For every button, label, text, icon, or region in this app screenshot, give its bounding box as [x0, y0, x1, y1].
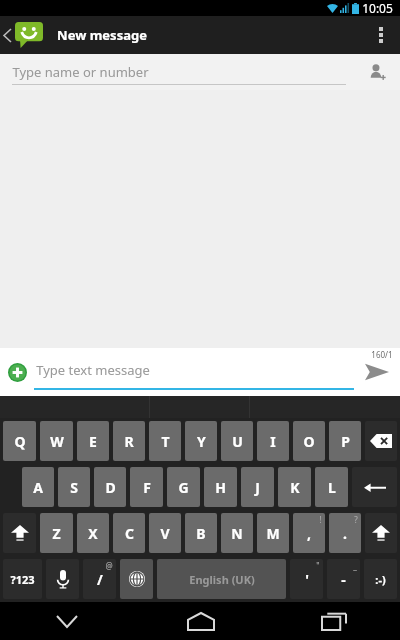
button[interactable]: U: [221, 421, 253, 461]
staticText: A: [33, 478, 43, 497]
button[interactable]: Q: [3, 421, 36, 461]
button[interactable]: M: [257, 513, 289, 553]
button[interactable]: C: [113, 513, 145, 553]
staticText: New message: [57, 26, 147, 44]
button[interactable]: Type text message: [34, 348, 354, 396]
staticText: !: [319, 514, 322, 525]
button[interactable]: X: [77, 513, 109, 553]
staticText: 10:05: [362, 0, 393, 16]
button[interactable]: globe: [120, 559, 153, 599]
staticText: P: [341, 432, 350, 451]
button[interactable]: J: [241, 467, 274, 507]
staticText: ": [316, 560, 320, 571]
button[interactable]: :-): [364, 559, 397, 599]
button[interactable]: Add recipient: [354, 54, 400, 90]
staticText: @: [105, 560, 113, 571]
staticText: Y: [197, 432, 206, 451]
button[interactable]: R: [113, 421, 145, 461]
staticText: U: [232, 432, 243, 451]
button[interactable]: O: [293, 421, 325, 461]
button[interactable]: S: [58, 467, 90, 507]
staticText: B: [196, 524, 206, 543]
staticText: N: [231, 524, 243, 543]
staticText: -: [341, 570, 346, 589]
button[interactable]: Y: [185, 421, 217, 461]
button[interactable]: B: [185, 513, 217, 553]
staticText: ?123: [10, 572, 35, 587]
button[interactable]: P: [329, 421, 361, 461]
button[interactable]: More options: [362, 16, 400, 54]
staticText: :-): [375, 572, 386, 587]
button[interactable]: I: [257, 421, 289, 461]
staticText: ,: [307, 524, 311, 543]
staticText: I: [270, 432, 276, 451]
button[interactable]: Home: [134, 602, 267, 640]
staticText: ': [305, 570, 309, 589]
staticText: E: [89, 432, 97, 451]
staticText: K: [290, 478, 300, 497]
staticText: S: [70, 478, 78, 497]
button[interactable]: V: [149, 513, 181, 553]
button[interactable]: N: [221, 513, 253, 553]
staticText: English (UK): [189, 572, 255, 587]
staticText: V: [160, 524, 170, 543]
staticText: M: [266, 524, 280, 543]
staticText: L: [328, 478, 336, 497]
button[interactable]: Send: [354, 348, 400, 396]
button[interactable]: ": [290, 559, 323, 599]
button[interactable]: Navigate up: [0, 16, 49, 54]
staticText: X: [88, 524, 98, 543]
button[interactable]: E: [77, 421, 109, 461]
button[interactable]: K: [278, 467, 311, 507]
staticText: Q: [14, 432, 26, 451]
button[interactable]: mic: [46, 559, 79, 599]
button[interactable]: English (UK): [157, 559, 286, 599]
button[interactable]: W: [40, 421, 73, 461]
button[interactable]: Type name or number: [0, 54, 354, 90]
button[interactable]: L: [315, 467, 348, 507]
staticText: Type text message: [36, 361, 150, 379]
staticText: Z: [52, 524, 61, 543]
button[interactable]: D: [94, 467, 126, 507]
staticText: F: [143, 478, 151, 497]
button[interactable]: backspace: [365, 421, 397, 461]
staticText: O: [303, 432, 315, 451]
button[interactable]: shift: [3, 513, 36, 553]
staticText: C: [125, 524, 134, 543]
staticText: _: [353, 560, 357, 571]
staticText: J: [255, 478, 260, 497]
staticText: D: [105, 478, 116, 497]
button[interactable]: shift: [365, 513, 397, 553]
staticText: R: [124, 432, 134, 451]
button[interactable]: Z: [40, 513, 73, 553]
button[interactable]: H: [204, 467, 237, 507]
button[interactable]: T: [149, 421, 181, 461]
button[interactable]: F: [130, 467, 163, 507]
staticText: ?: [354, 514, 358, 525]
staticText: T: [161, 432, 170, 451]
button[interactable]: Attach: [0, 348, 34, 396]
staticText: /: [97, 570, 103, 589]
staticText: H: [215, 478, 226, 497]
button[interactable]: !: [293, 513, 325, 553]
button[interactable]: _: [327, 559, 360, 599]
button[interactable]: @: [83, 559, 116, 599]
staticText: .: [343, 524, 347, 543]
button[interactable]: G: [167, 467, 200, 507]
button[interactable]: enter: [352, 467, 397, 507]
button[interactable]: ?123: [3, 559, 42, 599]
staticText: W: [50, 432, 64, 451]
button[interactable]: Hide keyboard: [0, 602, 134, 640]
button[interactable]: A: [22, 467, 54, 507]
button[interactable]: ?: [329, 513, 361, 553]
staticText: G: [178, 478, 189, 497]
staticText: Type name or number: [12, 63, 149, 81]
button[interactable]: Recent apps: [267, 602, 400, 640]
staticText: 160/1: [371, 349, 393, 360]
